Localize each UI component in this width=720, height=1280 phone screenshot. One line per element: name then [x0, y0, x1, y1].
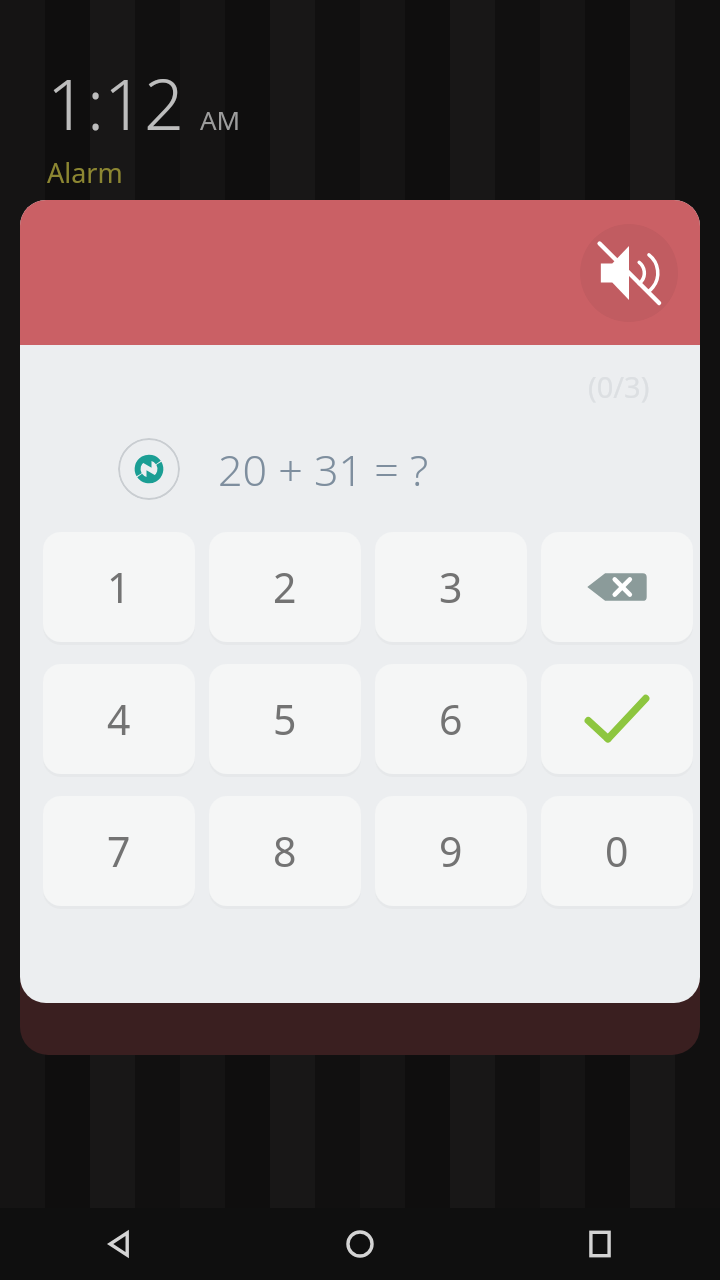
- staticText: 1:12: [47, 55, 184, 150]
- button[interactable]: Backspace: [541, 532, 693, 642]
- staticText: 1: [107, 559, 131, 615]
- staticText: 3: [439, 559, 463, 615]
- button[interactable]: 5: [209, 664, 361, 774]
- button[interactable]: 4: [43, 664, 195, 774]
- staticText: 4: [107, 691, 131, 747]
- staticText: 2: [273, 559, 297, 615]
- button[interactable]: Back: [0, 1208, 240, 1280]
- staticText: 8: [273, 823, 297, 879]
- staticText: (0/3): [588, 367, 650, 406]
- button[interactable]: Submit answer: [541, 664, 693, 774]
- staticText: 6: [439, 691, 463, 747]
- button[interactable]: 3: [375, 532, 527, 642]
- button[interactable]: 6: [375, 664, 527, 774]
- button[interactable]: Home: [240, 1208, 480, 1280]
- button[interactable]: 9: [375, 796, 527, 906]
- staticText: AM: [200, 102, 241, 137]
- staticText: 7: [107, 823, 131, 879]
- staticText: 5: [273, 691, 297, 747]
- button[interactable]: Mute alarm: [580, 224, 678, 322]
- button[interactable]: 7: [43, 796, 195, 906]
- button[interactable]: 2: [209, 532, 361, 642]
- staticText: 9: [439, 823, 463, 879]
- button[interactable]: Recent apps: [480, 1208, 720, 1280]
- button[interactable]: 8: [209, 796, 361, 906]
- button[interactable]: 1: [43, 532, 195, 642]
- button[interactable]: New problem: [118, 438, 180, 500]
- button[interactable]: 0: [541, 796, 693, 906]
- staticText: Alarm: [47, 154, 123, 191]
- staticText: 0: [605, 823, 629, 879]
- staticText: 20 + 31 = ?: [218, 440, 429, 499]
